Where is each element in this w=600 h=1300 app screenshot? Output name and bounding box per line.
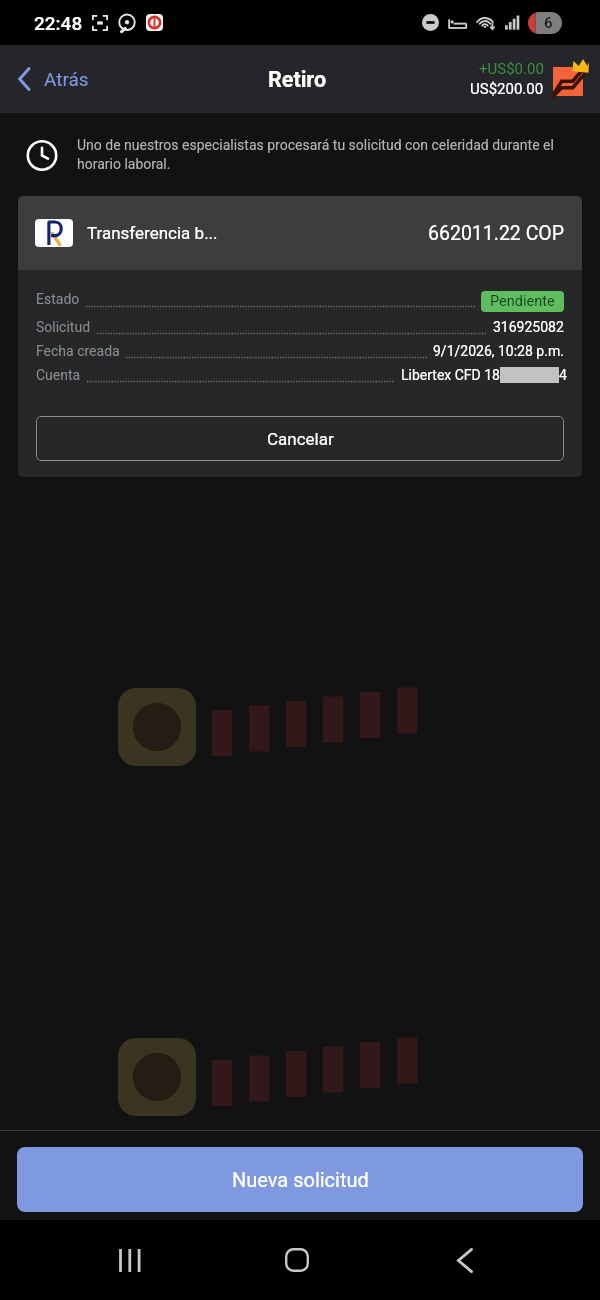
- button[interactable]: Atrás: [10, 58, 94, 100]
- button[interactable]: Inicio: [213, 1220, 381, 1300]
- button[interactable]: +US$0.00: [470, 60, 589, 98]
- staticText: 4: [559, 367, 564, 383]
- staticText: Pendiente: [490, 293, 555, 310]
- staticText: 9/1/2026, 10:28 p.m.: [433, 343, 564, 359]
- staticText: Nueva solicitud: [232, 1168, 369, 1191]
- staticText: 6: [544, 14, 553, 32]
- staticText: Cuenta: [36, 367, 81, 383]
- staticText: Solicitud: [36, 319, 91, 335]
- staticText: +US$0.00: [479, 60, 544, 78]
- staticText: Uno de nuestros especialistas procesará …: [77, 137, 566, 172]
- staticText: Fecha creada: [36, 343, 120, 359]
- other: Cuenta premium: [553, 59, 589, 96]
- staticText: 22:48: [34, 12, 83, 34]
- button[interactable]: Recientes: [46, 1220, 213, 1300]
- staticText: US$200.00: [470, 80, 544, 98]
- staticText: Estado: [36, 291, 80, 307]
- button[interactable]: Nueva solicitud: [17, 1147, 583, 1212]
- staticText: 662011.22 COP: [428, 222, 565, 245]
- staticText: Retiro: [268, 67, 327, 92]
- staticText: Transferencia b...: [87, 223, 218, 243]
- staticText: Libertex CFD 18: [401, 367, 500, 383]
- staticText: 316925082: [493, 319, 564, 335]
- staticText: Cancelar: [267, 429, 334, 449]
- button[interactable]: Cancelar: [36, 416, 564, 461]
- staticText: Atrás: [44, 68, 89, 90]
- button[interactable]: Atrás: [381, 1220, 549, 1300]
